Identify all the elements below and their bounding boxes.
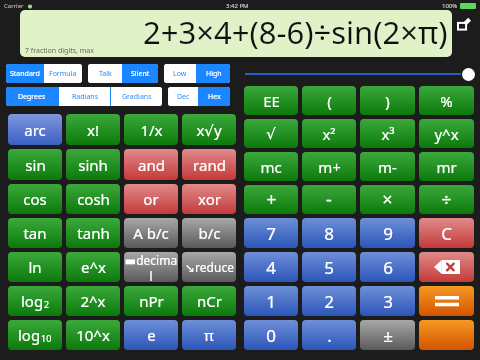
button[interactable]: ± — [360, 320, 415, 350]
button[interactable]: ln — [8, 252, 62, 282]
button[interactable]: y^x — [419, 119, 474, 148]
button[interactable]: m+ — [302, 152, 356, 181]
button[interactable]: 3 — [360, 286, 415, 316]
staticText: x! — [87, 120, 99, 140]
button[interactable]: Formula — [44, 64, 82, 83]
button[interactable]: ↘reduce — [182, 252, 236, 282]
staticText: mr — [436, 157, 457, 177]
button[interactable]: 2 — [302, 286, 356, 316]
button[interactable]: cosh — [66, 184, 120, 214]
staticText: tan — [23, 223, 47, 243]
button[interactable]: 1/x — [124, 114, 178, 145]
button[interactable]: x² — [302, 119, 356, 148]
button[interactable]: tanh — [66, 218, 120, 248]
button[interactable]: m- — [360, 152, 415, 181]
button[interactable]: 6 — [360, 252, 415, 282]
staticText: nPr — [139, 291, 164, 311]
staticText: and — [138, 155, 165, 175]
button[interactable]: tan — [8, 218, 62, 248]
staticText: √ — [266, 125, 276, 142]
button[interactable]: + — [244, 185, 298, 214]
staticText: ± — [383, 324, 393, 347]
button[interactable]: 4 — [244, 252, 298, 282]
button[interactable]: Slider — [462, 68, 475, 81]
button[interactable]: ( — [302, 86, 356, 115]
staticText: 3 — [383, 290, 393, 313]
staticText: π — [204, 325, 214, 345]
button[interactable]: sinh — [66, 149, 120, 180]
staticText: 9 — [383, 222, 393, 245]
button[interactable]: Standard — [6, 64, 43, 83]
button[interactable]: sin — [8, 149, 62, 180]
staticText: m- — [378, 157, 397, 177]
button[interactable]: 5 — [302, 252, 356, 282]
button[interactable]: equals — [419, 320, 474, 350]
staticText: cos — [23, 189, 47, 209]
staticText: x² — [322, 124, 336, 144]
staticText: ↘reduce — [185, 259, 234, 275]
button[interactable]: nPr — [124, 286, 178, 316]
button[interactable]: High — [197, 64, 230, 83]
button[interactable]: Gradians — [111, 87, 162, 106]
button[interactable]: mr — [419, 152, 474, 181]
button[interactable]: mc — [244, 152, 298, 181]
button[interactable]: b/c — [182, 218, 236, 248]
button[interactable]: A b/c — [124, 218, 178, 248]
button[interactable]: or — [124, 184, 178, 214]
staticText: Gradians — [122, 92, 152, 102]
button[interactable]: ÷ — [419, 185, 474, 214]
staticText: - — [326, 187, 332, 212]
button[interactable]: C — [419, 218, 474, 248]
button[interactable]: Hex — [199, 87, 230, 106]
button[interactable]: log — [8, 320, 62, 350]
button[interactable]: e^x — [66, 252, 120, 282]
staticText: cosh — [77, 189, 110, 209]
button[interactable]: ▬decimal — [124, 252, 178, 282]
button[interactable]: Low — [164, 64, 196, 83]
button[interactable]: x! — [66, 114, 120, 145]
staticText: mc — [260, 157, 282, 177]
button[interactable]: Dec — [168, 87, 198, 106]
button[interactable]: del — [419, 252, 474, 282]
staticText: + — [266, 187, 277, 212]
staticText: sin — [25, 155, 46, 175]
button[interactable]: √ — [244, 119, 298, 148]
button[interactable]: 1 — [244, 286, 298, 316]
button[interactable]: . — [302, 320, 356, 350]
button[interactable]: 9 — [360, 218, 415, 248]
button[interactable]: Degrees — [6, 87, 58, 106]
button[interactable]: x³ — [360, 119, 415, 148]
button[interactable]: cos — [8, 184, 62, 214]
button[interactable]: Silent — [123, 64, 158, 83]
button[interactable]: x√y — [182, 114, 236, 145]
button[interactable]: 10^x — [66, 320, 120, 350]
staticText: x√y — [196, 120, 222, 140]
button[interactable]: 8 — [302, 218, 356, 248]
button[interactable]: and — [124, 149, 178, 180]
button[interactable]: Radians — [59, 87, 110, 106]
staticText: 2 — [44, 298, 50, 310]
button[interactable]: arc — [8, 114, 62, 145]
button[interactable]: xor — [182, 184, 236, 214]
button[interactable]: 7 — [244, 218, 298, 248]
button[interactable]: rand — [182, 149, 236, 180]
button[interactable]: ) — [360, 86, 415, 115]
button[interactable]: Share — [454, 14, 474, 34]
staticText: 10 — [41, 332, 52, 344]
button[interactable]: 2^x — [66, 286, 120, 316]
button[interactable]: Talk — [88, 64, 122, 83]
staticText: rand — [193, 155, 226, 175]
button[interactable]: 0 — [244, 320, 298, 350]
button[interactable]: - — [302, 185, 356, 214]
staticText: × — [382, 187, 393, 212]
button[interactable]: eq — [419, 286, 474, 316]
staticText: 7 — [266, 222, 276, 245]
staticText: Standard — [10, 69, 40, 79]
button[interactable]: EE — [244, 86, 298, 115]
button[interactable]: π — [182, 320, 236, 350]
button[interactable]: log — [8, 286, 62, 316]
button[interactable]: nCr — [182, 286, 236, 316]
button[interactable]: % — [419, 86, 474, 115]
button[interactable]: × — [360, 185, 415, 214]
button[interactable]: e — [124, 320, 178, 350]
